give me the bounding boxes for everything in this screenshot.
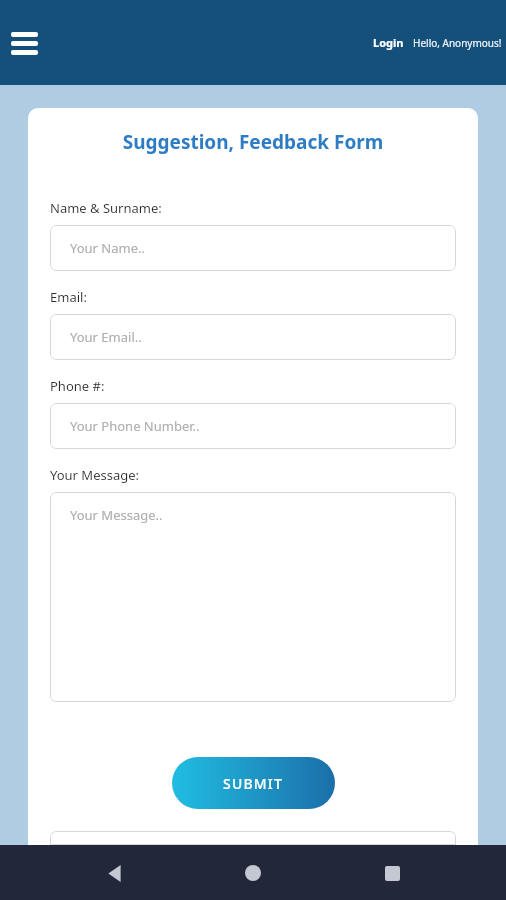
button[interactable]: Your Phone Number.. [50, 403, 456, 449]
button[interactable]: SUBMIT [172, 757, 335, 809]
staticText: Your Email.. [70, 328, 142, 346]
staticText: Your Message: [50, 466, 140, 484]
staticText: Your Name.. [70, 239, 145, 257]
staticText: Hello, Anonymous! [413, 36, 502, 50]
staticText: Phone #: [50, 377, 105, 395]
staticText: Login [373, 35, 404, 50]
button[interactable]: Open navigation menu [1, 20, 47, 66]
button[interactable]: Login [369, 27, 408, 58]
button[interactable]: Recent apps [368, 849, 416, 897]
button[interactable]: Your Email.. [50, 314, 456, 360]
staticText: SUBMIT [223, 774, 284, 793]
button[interactable]: Back [91, 849, 139, 897]
staticText: Your Message.. [70, 506, 163, 524]
button[interactable]: Home [229, 849, 277, 897]
staticText: Email: [50, 288, 87, 306]
staticText: Name & Surname: [50, 199, 162, 217]
button[interactable]: Your Name.. [50, 225, 456, 271]
staticText: Your Phone Number.. [70, 417, 200, 435]
button[interactable]: Your Message.. [50, 492, 456, 702]
staticText: Suggestion, Feedback Form [28, 129, 478, 155]
button[interactable] [50, 831, 456, 845]
